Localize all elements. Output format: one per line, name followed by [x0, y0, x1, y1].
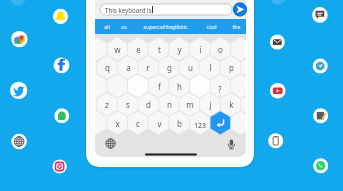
button[interactable]: r	[138, 58, 158, 76]
button[interactable]: c	[128, 114, 148, 132]
staticText: g	[167, 62, 172, 73]
staticText: z	[105, 99, 109, 110]
button[interactable]: insta	[53, 159, 67, 173]
button[interactable]: s	[118, 95, 138, 113]
button[interactable]: yt	[270, 83, 286, 99]
button[interactable]: phone	[268, 133, 283, 148]
staticText: f	[158, 81, 161, 92]
staticText: p	[229, 62, 234, 73]
staticText: l	[209, 62, 212, 73]
staticText: ?	[218, 84, 222, 95]
button[interactable]: fb	[54, 57, 70, 73]
button[interactable]: maps	[11, 31, 27, 47]
staticText: k	[229, 99, 234, 110]
button[interactable]: e	[128, 40, 148, 58]
button[interactable]: l	[200, 58, 220, 76]
staticText: This keyboard is	[105, 6, 152, 14]
button[interactable]: note	[313, 108, 328, 123]
button[interactable]: p	[221, 58, 241, 76]
staticText: a	[126, 62, 131, 73]
staticText: q	[105, 62, 110, 73]
button[interactable]: v	[149, 114, 169, 132]
button[interactable]: y	[169, 40, 189, 58]
staticText: v	[157, 118, 162, 129]
button[interactable]: so	[116, 19, 132, 34]
button[interactable]: supercalifragilistic	[137, 19, 193, 34]
button[interactable]: h	[169, 77, 189, 95]
staticText: u	[188, 62, 193, 73]
staticText: supercalifragilistic	[143, 23, 188, 30]
staticText: h	[177, 81, 182, 92]
button[interactable]: q	[97, 58, 117, 76]
staticText: the	[232, 23, 241, 30]
button[interactable]: z	[97, 95, 117, 113]
staticText: e	[136, 44, 141, 55]
button[interactable]: k	[221, 95, 241, 113]
button[interactable]: ?	[210, 77, 230, 95]
button[interactable]: j	[200, 95, 220, 113]
staticText: all	[104, 23, 110, 30]
button[interactable]: f	[149, 77, 169, 95]
button[interactable]: chat	[312, 7, 328, 23]
button[interactable]: mail	[270, 35, 285, 50]
button[interactable]: u	[180, 58, 200, 76]
button[interactable]: cool	[201, 19, 221, 34]
button[interactable]: snap	[53, 9, 68, 24]
staticText: o	[218, 44, 223, 55]
button[interactable]: o	[210, 40, 230, 58]
staticText: s	[126, 99, 130, 110]
button[interactable]: a	[118, 58, 138, 76]
button[interactable]: n	[159, 95, 179, 113]
staticText: 123	[194, 121, 207, 131]
button[interactable]: g	[159, 58, 179, 76]
button[interactable]: Voice input	[224, 136, 240, 152]
staticText: d	[146, 99, 151, 110]
staticText: n	[167, 99, 172, 110]
button[interactable]: t	[149, 40, 169, 58]
button[interactable]: tw	[10, 82, 27, 99]
staticText: cool	[206, 23, 217, 30]
staticText: x	[115, 118, 120, 129]
button[interactable]: w	[107, 40, 127, 58]
button[interactable]: m	[180, 95, 200, 113]
staticText: m	[186, 99, 194, 110]
button[interactable]: globe	[11, 134, 27, 150]
staticText: t	[158, 44, 161, 55]
button[interactable]: tg	[313, 59, 328, 74]
staticText: so	[121, 23, 127, 30]
staticText: j	[209, 99, 212, 110]
button[interactable]: Change keyboard language	[103, 136, 119, 152]
button[interactable]: x	[107, 114, 127, 132]
button[interactable]: i	[190, 40, 210, 58]
staticText: b	[177, 118, 182, 129]
button[interactable]: b	[169, 114, 189, 132]
button[interactable]: ever	[54, 108, 69, 123]
staticText: i	[199, 44, 202, 55]
button[interactable]: Enter	[210, 112, 230, 134]
button[interactable]: the	[227, 19, 245, 34]
button[interactable]: d	[138, 95, 158, 113]
button[interactable]: 123	[190, 114, 210, 132]
staticText: w	[114, 44, 121, 55]
staticText: c	[136, 118, 140, 129]
button[interactable]: wa	[313, 158, 328, 173]
button[interactable]: This keyboard is	[100, 4, 232, 15]
staticText: r	[146, 62, 150, 73]
staticText: y	[177, 44, 182, 55]
button[interactable]: all	[99, 19, 115, 34]
